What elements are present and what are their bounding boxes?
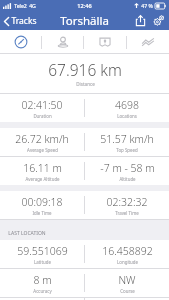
button[interactable]: 59.551069 [0,240,169,268]
button[interactable]: 8 m [0,269,169,297]
staticText: Longitude [117,259,138,265]
staticText: 4698 [115,98,139,112]
staticText: 00:09:18 [21,195,63,209]
staticText: 59.551069 [17,244,68,258]
button[interactable]: Share [131,12,150,29]
staticText: 02:32:32 [106,195,148,209]
staticText: Accuracy [33,288,52,294]
button[interactable]: 16.11 m [0,157,169,185]
button[interactable]: Settings [150,12,169,29]
button[interactable]: Dashboard [0,30,41,54]
button[interactable]: Location [42,30,83,54]
staticText: Idle Time [32,210,52,216]
button[interactable]: 26.72 km/h [0,128,169,156]
staticText: Torshälla [60,13,109,29]
button[interactable]: 00:09:18 [0,191,169,219]
staticText: 8 m [33,273,52,287]
staticText: Average Altitude [25,176,60,182]
staticText: Tele2 [14,2,27,9]
staticText: Travel Time [115,210,139,216]
staticText: 16.11 m [23,161,62,175]
staticText: -7 m - 58 m [100,161,155,175]
button[interactable]: Tracks [0,12,43,30]
staticText: Duration [33,113,52,119]
staticText: 51.57 km/h [100,132,154,146]
staticText: Average Speed [27,147,58,153]
staticText: Latitude [34,259,51,265]
button[interactable]: Chart [127,30,169,54]
staticText: 16.458892 [102,244,153,258]
button[interactable]: Map [84,30,126,54]
staticText: Tracks [11,15,37,27]
staticText: Distance [76,81,95,87]
staticText: Locations [117,113,137,119]
staticText: 12:46 [77,2,92,10]
staticText: 47 % [141,2,153,9]
staticText: Course [120,288,135,294]
staticText: Top Speed [116,147,138,153]
staticText: 26.72 km/h [15,132,69,146]
staticText: Altitude [119,176,136,182]
staticText: 67.916 km [48,59,122,80]
button[interactable]: 02:41:50 [0,94,169,122]
staticText: 4G [29,2,36,9]
staticText: LAST LOCATION [8,230,46,237]
staticText: 02:41:50 [21,98,63,112]
staticText: NW [118,273,136,287]
